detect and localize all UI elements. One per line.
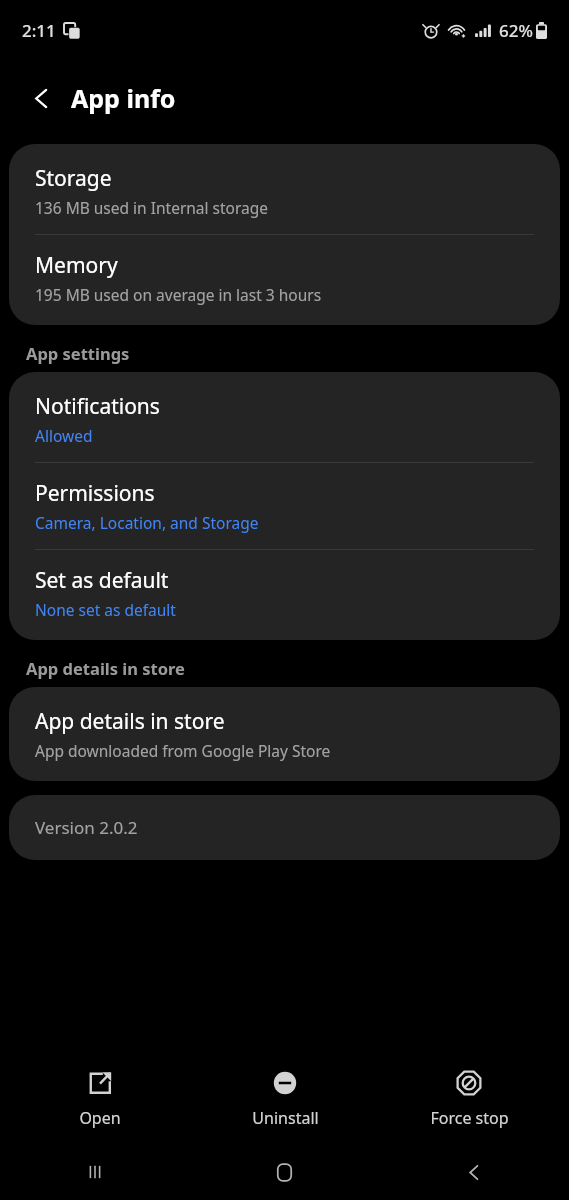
button[interactable]: Version 2.0.2 [9,795,560,860]
button[interactable]: Back [379,1144,569,1200]
staticText: 195 MB used on average in last 3 hours [35,284,322,305]
button[interactable]: Force stop [384,1063,554,1135]
button[interactable]: Open [15,1063,185,1135]
staticText: None set as default [35,599,176,620]
button[interactable]: Set as default [9,550,560,640]
staticText: Camera, Location, and Storage [35,512,259,533]
staticText: Allowed [35,425,93,446]
button[interactable]: App details in store [9,687,560,781]
staticText: 62% [499,19,533,42]
staticText: Force stop [430,1107,509,1129]
staticText: App info [71,81,176,115]
button[interactable]: Home [189,1144,379,1200]
staticText: 2:11 [22,19,56,42]
staticText: Permissions [35,479,155,508]
staticText: Uninstall [252,1107,319,1129]
staticText: App downloaded from Google Play Store [35,740,331,761]
staticText: Storage [35,164,112,193]
button[interactable]: Permissions [9,463,560,549]
staticText: App settings [26,342,130,364]
staticText: App details in store [35,707,225,736]
button[interactable]: Notifications [9,372,560,462]
staticText: Open [79,1107,121,1129]
staticText: Memory [35,251,118,280]
button[interactable]: Storage [9,144,560,234]
staticText: App details in store [26,657,185,679]
staticText: 136 MB used in Internal storage [35,197,269,218]
button[interactable]: Recent apps [0,1144,189,1200]
staticText: Notifications [35,392,160,421]
button[interactable]: Back [20,76,64,120]
button[interactable]: Uninstall [200,1063,370,1135]
staticText: Set as default [35,566,169,595]
button[interactable]: Memory [9,235,560,325]
staticText: Version 2.0.2 [35,816,138,839]
